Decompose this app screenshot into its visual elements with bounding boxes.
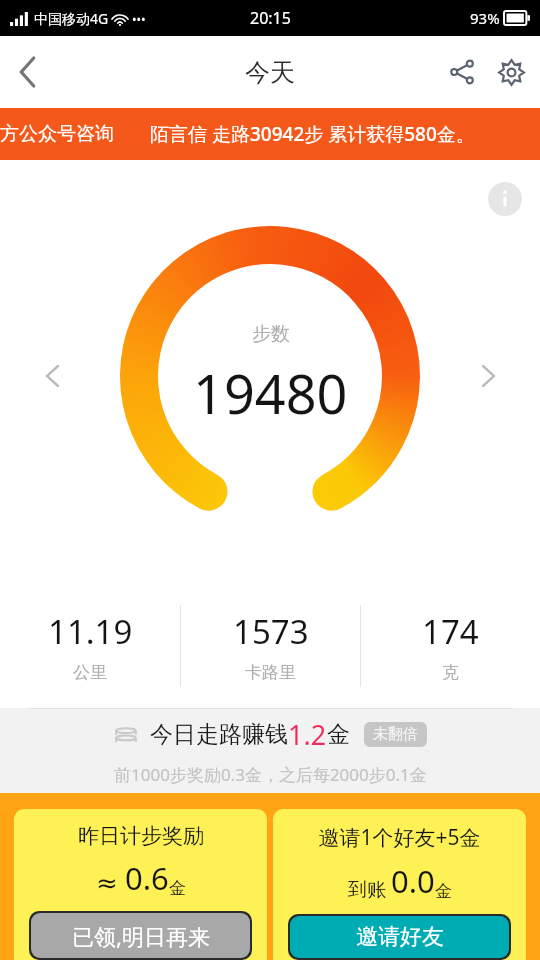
staticText: 1573 (233, 609, 309, 654)
staticText: 0.6 (125, 857, 169, 899)
staticText: 金 (169, 878, 186, 899)
button[interactable]: Previous day (34, 358, 70, 394)
button[interactable]: 邀请好友 (290, 916, 509, 958)
button[interactable]: 今日走路赚钱 (0, 708, 540, 793)
staticText: 到账 (348, 878, 386, 902)
button[interactable]: 昨日计步奖励 (14, 809, 267, 960)
button[interactable]: 方公众号咨询 (0, 108, 540, 160)
button[interactable]: 1573 (181, 592, 360, 700)
button[interactable]: Settings (488, 46, 534, 98)
staticText: 93% (470, 8, 500, 28)
button[interactable]: Back (0, 44, 56, 100)
staticText: ••• (132, 11, 146, 27)
staticText: ≈ (96, 864, 125, 899)
staticText: 卡路里 (245, 662, 296, 683)
button[interactable]: 174 (361, 592, 540, 700)
staticText: 公里 (73, 662, 107, 683)
staticText: 金 (435, 881, 452, 902)
staticText: 20:15 (250, 7, 291, 29)
staticText: 未翻倍 (373, 725, 418, 744)
staticText: 已领,明日再来 (72, 921, 210, 951)
staticText: 0.0 (391, 860, 435, 902)
staticText: 19480 (193, 356, 348, 430)
staticText: 方公众号咨询 (0, 122, 114, 146)
staticText: 今日走路赚钱 (150, 720, 288, 749)
staticText: 陌言信 走路30942步 累计获得580金。 (150, 121, 475, 147)
button[interactable]: Share (436, 46, 488, 98)
button[interactable]: 已领,明日再来 (31, 913, 250, 958)
button[interactable]: Info (488, 182, 522, 216)
button[interactable]: Next day (470, 358, 506, 394)
button[interactable]: 11.19 (0, 592, 180, 700)
staticText: 174 (422, 609, 479, 654)
staticText: 1.2 (288, 716, 327, 753)
staticText: 11.19 (48, 609, 133, 654)
staticText: 今天 (245, 57, 295, 88)
staticText: 昨日计步奖励 (78, 823, 204, 849)
button[interactable]: 邀请1个好友+5金 (273, 809, 526, 960)
staticText: 邀请1个好友+5金 (318, 823, 481, 852)
staticText: 中国移动4G (34, 9, 109, 28)
staticText: 邀请好友 (356, 923, 444, 951)
staticText: 金 (327, 720, 350, 749)
staticText: 步数 (252, 322, 290, 346)
staticText: 克 (442, 662, 459, 683)
staticText: 前1000步奖励0.3金，之后每2000步0.1金 (114, 763, 427, 786)
